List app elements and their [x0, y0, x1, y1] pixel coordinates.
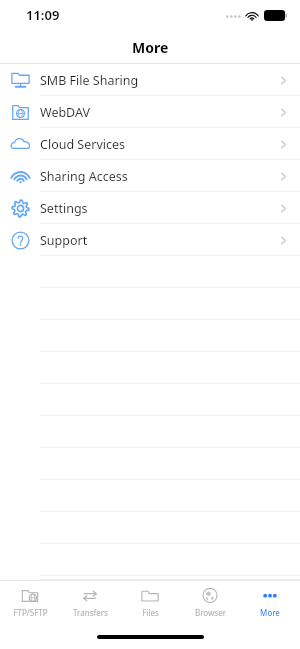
- staticText: More: [132, 38, 169, 57]
- staticText: WebDAV: [40, 104, 90, 121]
- button[interactable]: WebDAV: [0, 96, 300, 128]
- button[interactable]: Files: [120, 581, 180, 624]
- staticText: SMB File Sharing: [40, 72, 139, 89]
- staticText: Transfers: [73, 607, 108, 618]
- staticText: Sharing Access: [40, 168, 128, 185]
- button[interactable]: SMB File Sharing: [0, 64, 300, 96]
- staticText: Cloud Services: [40, 136, 126, 153]
- button[interactable]: Transfers: [60, 581, 120, 624]
- staticText: FTP/SFTP: [13, 607, 48, 618]
- button[interactable]: FTP/SFTP: [0, 581, 60, 624]
- button[interactable]: Sharing Access: [0, 160, 300, 192]
- staticText: Browser: [195, 607, 226, 618]
- button[interactable]: Cloud Services: [0, 128, 300, 160]
- button[interactable]: Support: [0, 224, 300, 256]
- staticText: Files: [142, 607, 159, 618]
- button[interactable]: More: [240, 581, 300, 624]
- staticText: Support: [40, 232, 88, 249]
- staticText: More: [260, 607, 280, 618]
- staticText: Settings: [40, 200, 88, 217]
- button[interactable]: Browser: [180, 581, 240, 624]
- button[interactable]: Settings: [0, 192, 300, 224]
- staticText: 11:09: [26, 6, 60, 24]
